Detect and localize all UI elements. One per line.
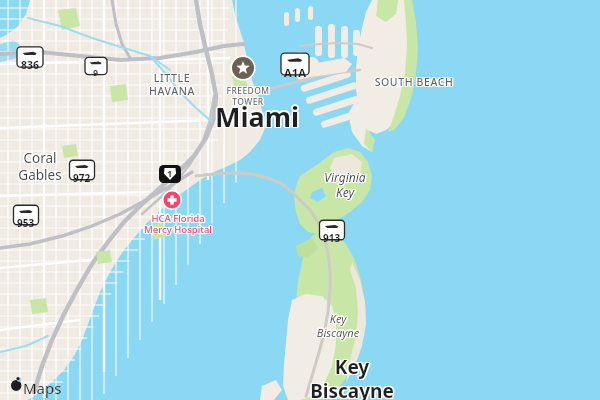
button[interactable]: Map of Miami [0, 0, 600, 400]
